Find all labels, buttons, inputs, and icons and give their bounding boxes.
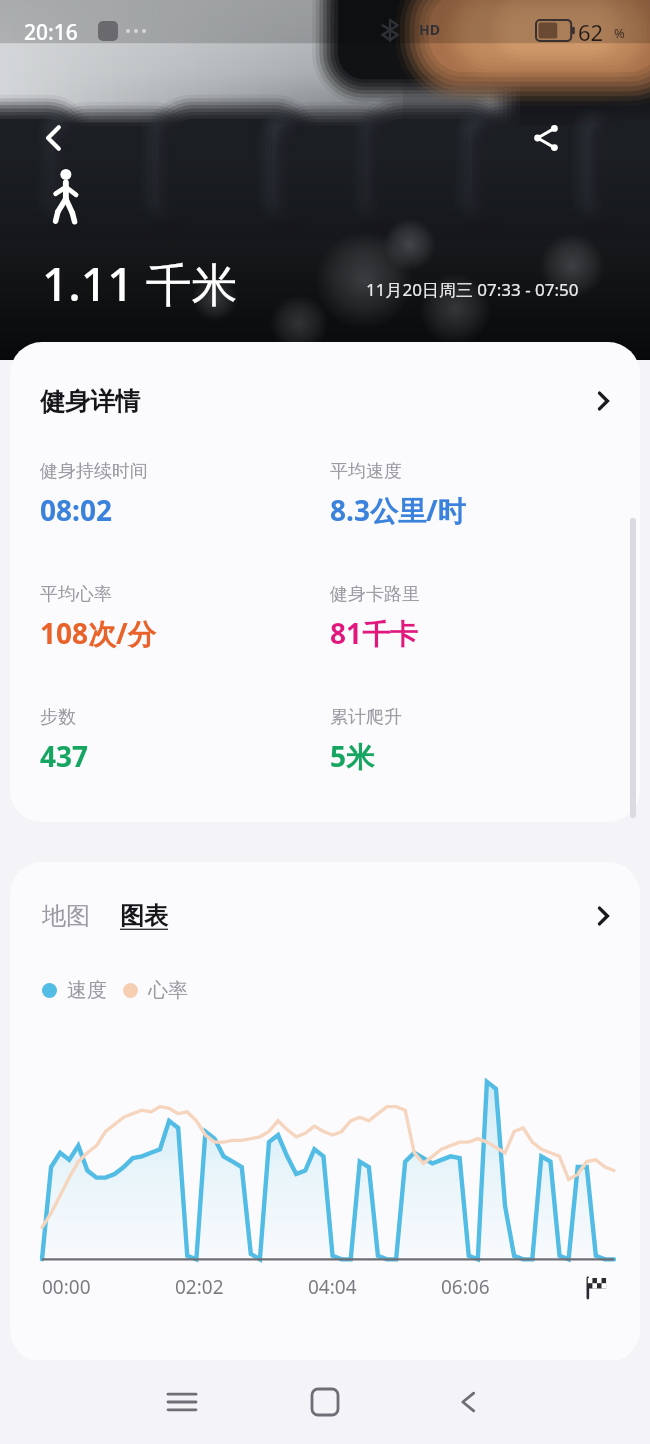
- button[interactable]: 健身详情: [10, 342, 640, 460]
- staticText: 图表: [120, 901, 168, 931]
- staticText: 累计爬升: [330, 706, 402, 729]
- button[interactable]: 地图: [40, 893, 92, 939]
- staticText: 08:02: [40, 491, 112, 529]
- staticText: 速度: [67, 978, 107, 1003]
- staticText: 00:00: [42, 1274, 91, 1300]
- staticText: 437: [40, 737, 89, 775]
- staticText: 04:04: [308, 1274, 357, 1300]
- staticText: %: [614, 24, 625, 42]
- staticText: 81千卡: [330, 614, 419, 652]
- staticText: HD: [419, 20, 440, 39]
- button[interactable]: Back: [26, 110, 82, 166]
- staticText: 健身详情: [40, 386, 140, 417]
- staticText: 平均心率: [40, 583, 112, 606]
- staticText: 平均速度: [330, 460, 402, 483]
- staticText: 02:02: [175, 1274, 224, 1300]
- staticText: 11月20日周三 07:33 - 07:50: [366, 278, 579, 301]
- staticText: 健身卡路里: [330, 583, 420, 606]
- staticText: 20:16: [24, 18, 78, 47]
- staticText: 108次/分: [40, 614, 156, 652]
- staticText: 62: [578, 17, 604, 47]
- staticText: 8.3公里/时: [330, 491, 466, 529]
- staticText: 06:06: [441, 1274, 490, 1300]
- button[interactable]: Share: [518, 110, 574, 166]
- button[interactable]: Back: [436, 1370, 500, 1434]
- staticText: 心率: [148, 978, 188, 1003]
- staticText: 5米: [330, 737, 375, 775]
- button[interactable]: 图表: [118, 893, 170, 939]
- button[interactable]: Recent apps: [150, 1370, 214, 1434]
- button[interactable]: Home: [293, 1370, 357, 1434]
- button[interactable]: Open chart: [592, 905, 614, 927]
- staticText: 步数: [40, 706, 76, 729]
- staticText: 健身持续时间: [40, 460, 148, 483]
- staticText: 1.11 千米: [42, 252, 238, 315]
- staticText: 地图: [42, 901, 90, 931]
